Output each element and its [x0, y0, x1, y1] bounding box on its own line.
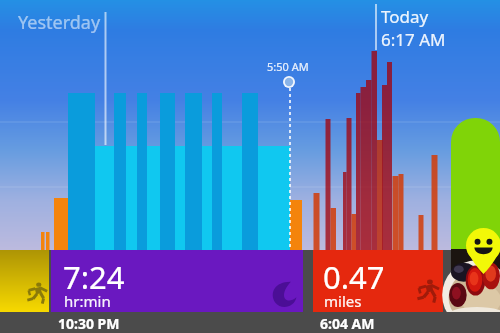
staticText: 10:30 PM [58, 314, 120, 333]
button[interactable]: Steps [0, 250, 49, 312]
button[interactable]: Meal photo [451, 249, 500, 312]
staticText: 6:17 AM [381, 28, 446, 51]
button[interactable]: 0.47 [313, 250, 443, 312]
staticText: 5:50 AM [267, 59, 309, 74]
staticText: 0.47 [323, 256, 385, 298]
button[interactable]: Meals [451, 118, 500, 249]
staticText: hr:min [64, 291, 111, 311]
staticText: Yesterday [18, 10, 101, 35]
staticText: 6:04 AM [320, 314, 375, 333]
staticText: Today [381, 5, 429, 28]
staticText: 7:24 [63, 256, 125, 298]
button[interactable]: 7:24 [51, 250, 303, 312]
staticText: miles [324, 291, 362, 311]
